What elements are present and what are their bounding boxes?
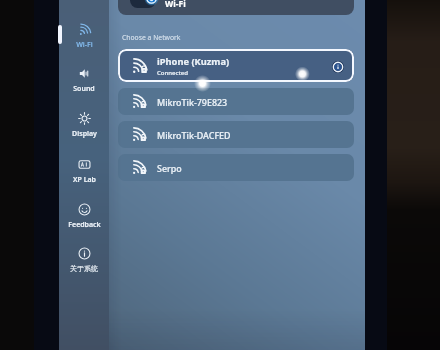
staticText: iPhone (Kuzma) bbox=[157, 55, 230, 68]
staticText: MikroTik-79E823 bbox=[157, 96, 228, 108]
button[interactable]: Sound bbox=[59, 67, 109, 100]
staticText: Serpo bbox=[157, 162, 182, 174]
staticText: Display bbox=[72, 129, 97, 139]
button[interactable]: Wi-Fi on bbox=[118, 0, 354, 15]
button[interactable]: 关于系统 bbox=[59, 247, 109, 280]
staticText: 关于系统 bbox=[70, 264, 98, 273]
button[interactable]: Wi-Fi bbox=[59, 23, 109, 56]
staticText: XP Lab bbox=[73, 175, 96, 185]
button[interactable]: Feedback bbox=[59, 203, 109, 236]
staticText: MikroTik-DACFED bbox=[157, 129, 231, 141]
button[interactable]: Display bbox=[59, 112, 109, 145]
button[interactable]: MikroTik-79E823 bbox=[118, 88, 354, 115]
button[interactable]: Network info bbox=[329, 58, 347, 76]
staticText: Feedback bbox=[68, 220, 101, 230]
button[interactable]: iPhone (Kuzma) bbox=[118, 49, 354, 82]
button[interactable]: XP Lab bbox=[59, 158, 109, 191]
staticText: Sound bbox=[73, 84, 95, 94]
staticText: Wi-Fi bbox=[76, 40, 93, 50]
button[interactable]: MikroTik-DACFED bbox=[118, 121, 354, 148]
staticText: Wi-Fi bbox=[165, 0, 186, 10]
staticText: Connected bbox=[157, 69, 188, 77]
staticText: Choose a Network bbox=[122, 33, 181, 42]
button[interactable]: Wi-Fi on bbox=[130, 0, 156, 8]
button[interactable]: Serpo bbox=[118, 154, 354, 181]
